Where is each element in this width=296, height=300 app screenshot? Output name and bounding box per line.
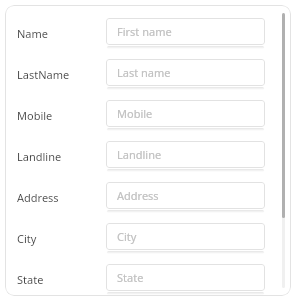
button[interactable]: City (106, 223, 265, 254)
button[interactable]: Address (106, 182, 265, 213)
staticText: State (117, 270, 144, 285)
button[interactable]: Landline (106, 141, 265, 172)
staticText: Mobile (17, 108, 53, 123)
staticText: Name (17, 26, 49, 41)
button[interactable]: Address (5, 177, 291, 217)
button[interactable]: Landline (5, 136, 291, 176)
button[interactable]: Last name (106, 59, 265, 90)
button[interactable]: Mobile (106, 100, 265, 131)
staticText: City (117, 229, 137, 244)
staticText: Mobile (117, 106, 153, 121)
staticText: Address (17, 190, 59, 205)
button[interactable]: Name (5, 13, 291, 53)
staticText: LastName (17, 67, 70, 82)
button[interactable]: State (5, 259, 291, 296)
staticText: City (17, 231, 37, 246)
staticText: First name (117, 24, 172, 39)
staticText: Landline (17, 149, 62, 164)
other: Scrollbar (282, 13, 285, 288)
button[interactable]: Mobile (5, 95, 291, 135)
staticText: Address (117, 188, 159, 203)
button[interactable]: State (106, 264, 265, 295)
button[interactable]: LastName (5, 54, 291, 94)
staticText: Landline (117, 147, 162, 162)
button[interactable]: First name (106, 18, 265, 49)
staticText: State (17, 272, 44, 287)
staticText: Last name (117, 65, 171, 80)
button[interactable]: City (5, 218, 291, 258)
